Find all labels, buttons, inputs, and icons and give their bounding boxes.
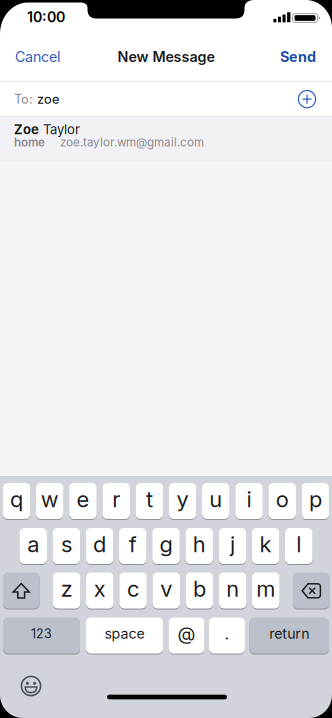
button[interactable]: Cancel xyxy=(15,48,60,65)
staticText: r xyxy=(112,486,120,512)
staticText: t xyxy=(146,486,153,512)
staticText: zoe xyxy=(37,91,59,107)
button[interactable]: Add Contact xyxy=(297,89,317,109)
button[interactable]: k xyxy=(252,527,279,564)
staticText: z xyxy=(61,575,73,602)
staticText: y xyxy=(177,486,189,512)
staticText: m xyxy=(256,575,275,602)
staticText: p xyxy=(309,486,322,512)
staticText: s xyxy=(61,531,72,557)
button[interactable]: t xyxy=(136,482,163,519)
button[interactable]: p xyxy=(302,482,329,519)
button[interactable]: x xyxy=(86,572,114,609)
button[interactable]: w xyxy=(36,482,63,519)
button[interactable]: c xyxy=(119,572,147,609)
button[interactable]: i xyxy=(235,482,263,519)
staticText: i xyxy=(246,486,251,512)
staticText: d xyxy=(93,531,106,557)
button[interactable]: g xyxy=(152,527,180,564)
staticText: Send xyxy=(280,48,316,65)
button[interactable]: r xyxy=(102,482,130,519)
button[interactable]: y xyxy=(169,482,196,519)
staticText: @ xyxy=(177,622,195,645)
staticText: j xyxy=(230,531,235,557)
button[interactable]: Delete xyxy=(293,572,329,609)
button[interactable]: b xyxy=(186,572,213,609)
button[interactable]: Send xyxy=(280,48,316,65)
staticText: w xyxy=(41,486,59,512)
button[interactable]: d xyxy=(86,527,113,564)
button[interactable]: a xyxy=(19,527,47,564)
button[interactable]: u xyxy=(202,482,229,519)
staticText: h xyxy=(193,531,206,557)
button[interactable]: return xyxy=(249,617,329,654)
staticText: u xyxy=(209,486,222,512)
button[interactable]: o xyxy=(268,482,296,519)
button[interactable]: j xyxy=(219,527,246,564)
staticText: home xyxy=(14,135,45,149)
staticText: zoe.taylor.wm@gmail.com xyxy=(60,135,204,149)
staticText: 123 xyxy=(31,626,52,641)
button[interactable]: l xyxy=(285,527,312,564)
staticText: Cancel xyxy=(15,48,60,65)
button[interactable]: . xyxy=(209,617,245,654)
staticText: q xyxy=(10,486,23,512)
staticText: e xyxy=(76,486,89,512)
staticText: l xyxy=(296,531,301,557)
button[interactable]: e xyxy=(69,482,97,519)
staticText: return xyxy=(269,625,309,642)
staticText: Zoe Taylor xyxy=(14,122,80,137)
button[interactable]: f xyxy=(119,527,146,564)
button[interactable]: s xyxy=(53,527,80,564)
button[interactable]: q xyxy=(3,482,30,519)
button[interactable]: m xyxy=(252,572,280,609)
button[interactable]: n xyxy=(219,572,246,609)
staticText: b xyxy=(193,575,206,602)
staticText: a xyxy=(27,531,39,557)
button[interactable]: Shift xyxy=(3,572,39,609)
staticText: o xyxy=(276,486,289,512)
button[interactable]: space xyxy=(86,617,163,654)
staticText: v xyxy=(160,575,172,602)
button[interactable]: v xyxy=(152,572,180,609)
staticText: c xyxy=(127,575,139,602)
staticText: 10:00 xyxy=(27,8,65,26)
button[interactable]: h xyxy=(185,527,213,564)
button[interactable]: Emoji xyxy=(20,675,42,697)
button[interactable]: 123 xyxy=(3,617,80,654)
staticText: space xyxy=(104,625,144,642)
staticText: To: xyxy=(14,91,37,107)
button[interactable]: Zoe Taylor xyxy=(0,117,332,161)
button[interactable]: @ xyxy=(168,617,204,654)
staticText: New Message xyxy=(117,48,214,65)
staticText: g xyxy=(159,531,172,557)
staticText: . xyxy=(224,624,229,643)
staticText: k xyxy=(260,531,272,557)
button[interactable]: z xyxy=(53,572,80,609)
staticText: n xyxy=(226,575,239,602)
staticText: f xyxy=(129,531,137,557)
staticText: x xyxy=(94,575,106,602)
